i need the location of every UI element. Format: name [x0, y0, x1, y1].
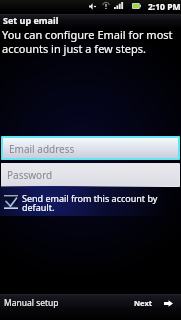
button[interactable]: Email address [1, 136, 180, 160]
staticText: Email address [9, 142, 75, 156]
staticText: You can configure Email for most account… [2, 27, 180, 56]
staticText: Manual setup [4, 297, 59, 309]
button[interactable]: Send email from this account by default. [0, 186, 181, 216]
staticText: Send email from this account by default. [22, 192, 177, 214]
staticText: Next [134, 298, 153, 308]
staticText: Password [7, 168, 53, 182]
staticText: Set up email [3, 14, 59, 26]
button[interactable]: Password [1, 163, 180, 187]
button[interactable]: Manual setup [0, 294, 65, 312]
other: Next [164, 300, 173, 307]
button[interactable]: Next [128, 294, 181, 312]
staticText: 2:10 PM [148, 1, 181, 13]
